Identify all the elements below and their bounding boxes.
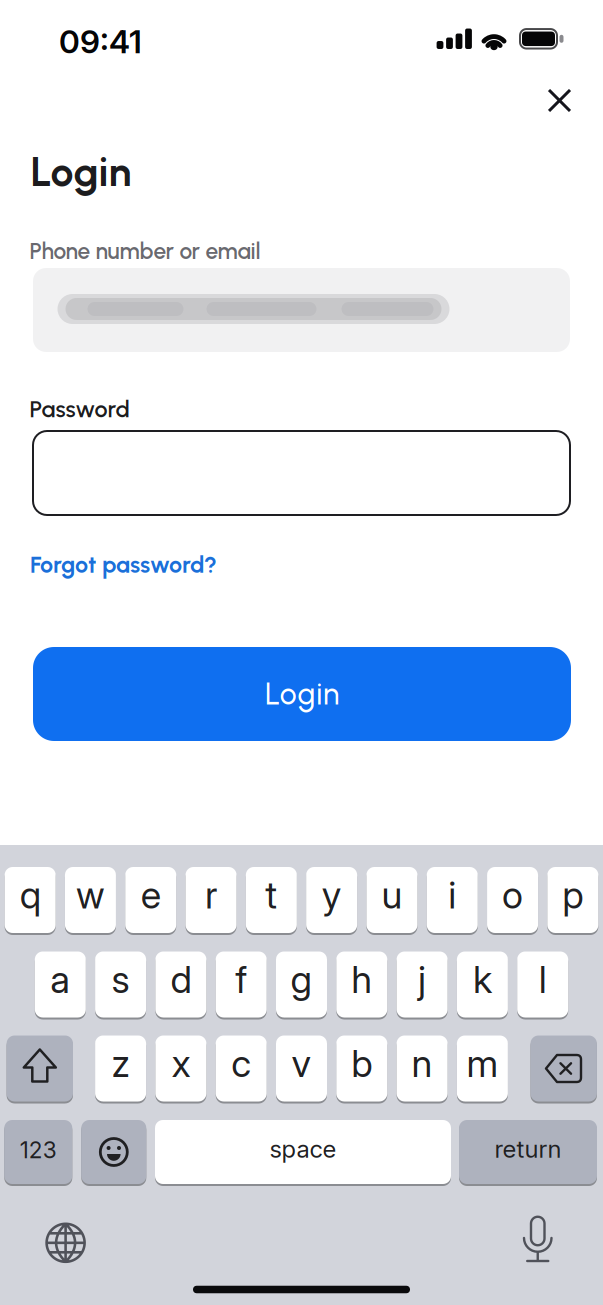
- button[interactable]: Login: [33, 647, 571, 741]
- button[interactable]: i: [427, 866, 478, 934]
- button[interactable]: l: [517, 950, 568, 1018]
- staticText: Login: [30, 147, 131, 196]
- button[interactable]: y: [306, 866, 357, 934]
- button[interactable]: q: [5, 866, 56, 934]
- staticText: 09:41: [59, 22, 142, 61]
- button[interactable]: 123: [4, 1119, 72, 1185]
- button[interactable]: w: [65, 866, 116, 934]
- staticText: i: [448, 872, 456, 918]
- staticText: space: [269, 1134, 336, 1163]
- button[interactable]: b: [336, 1034, 387, 1102]
- button[interactable]: f: [216, 950, 267, 1018]
- button[interactable]: r: [185, 866, 236, 934]
- staticText: g: [290, 957, 312, 1002]
- staticText: Password: [29, 395, 129, 423]
- staticText: y: [322, 872, 342, 918]
- button[interactable]: return: [459, 1119, 597, 1185]
- staticText: v: [291, 1041, 311, 1086]
- staticText: u: [381, 872, 402, 918]
- button[interactable]: c: [216, 1034, 267, 1102]
- staticText: o: [502, 872, 523, 918]
- button[interactable]: e: [125, 866, 176, 934]
- staticText: a: [50, 957, 70, 1002]
- staticText: m: [466, 1041, 498, 1086]
- button[interactable]: j: [397, 950, 448, 1018]
- button[interactable]: s: [95, 950, 146, 1018]
- staticText: n: [412, 1041, 433, 1086]
- button[interactable]: o: [487, 866, 538, 934]
- button[interactable]: n: [397, 1034, 448, 1102]
- button[interactable]: [32, 430, 571, 516]
- button[interactable]: [33, 268, 570, 352]
- staticText: p: [562, 872, 583, 918]
- staticText: Phone number or email: [29, 237, 260, 265]
- button[interactable]: [42, 1219, 90, 1267]
- button[interactable]: t: [246, 866, 297, 934]
- staticText: w: [76, 872, 105, 918]
- button[interactable]: Forgot password?: [30, 550, 217, 578]
- button[interactable]: p: [547, 866, 598, 934]
- button[interactable]: [538, 79, 581, 122]
- button[interactable]: [530, 1034, 597, 1102]
- staticText: d: [170, 957, 191, 1002]
- button[interactable]: m: [457, 1034, 508, 1102]
- staticText: 123: [20, 1136, 57, 1164]
- staticText: k: [473, 957, 492, 1002]
- staticText: q: [20, 872, 41, 918]
- staticText: c: [231, 1041, 251, 1086]
- staticText: r: [205, 872, 217, 918]
- button[interactable]: z: [95, 1034, 146, 1102]
- button[interactable]: [81, 1119, 146, 1185]
- staticText: l: [539, 957, 547, 1002]
- button[interactable]: g: [276, 950, 327, 1018]
- staticText: x: [171, 1041, 190, 1086]
- staticText: t: [265, 872, 277, 918]
- button[interactable]: space: [155, 1119, 451, 1185]
- button[interactable]: [514, 1213, 562, 1269]
- staticText: e: [141, 872, 161, 918]
- button[interactable]: x: [155, 1034, 206, 1102]
- staticText: f: [235, 957, 247, 1002]
- button[interactable]: u: [366, 866, 417, 934]
- button[interactable]: v: [276, 1034, 327, 1102]
- button[interactable]: [7, 1034, 73, 1102]
- staticText: h: [351, 957, 372, 1002]
- staticText: s: [112, 957, 130, 1002]
- button[interactable]: a: [35, 950, 86, 1018]
- staticText: Forgot password?: [30, 550, 217, 578]
- button[interactable]: k: [457, 950, 508, 1018]
- staticText: Login: [265, 676, 339, 712]
- staticText: j: [418, 957, 426, 1002]
- staticText: return: [494, 1134, 561, 1163]
- button[interactable]: h: [336, 950, 387, 1018]
- staticText: z: [112, 1041, 130, 1086]
- button[interactable]: d: [155, 950, 206, 1018]
- staticText: b: [351, 1041, 372, 1086]
